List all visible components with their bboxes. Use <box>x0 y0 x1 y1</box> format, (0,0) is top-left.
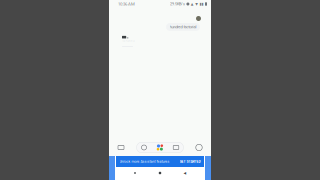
staticText: ▼ <box>195 2 198 6</box>
button[interactable]: Keyboard <box>115 141 127 153</box>
button[interactable]: Camera <box>136 142 151 153</box>
staticText: ▲ <box>191 2 194 6</box>
button[interactable]: Unlock more Assistant features <box>116 156 204 167</box>
button[interactable]: Google Assistant <box>151 142 168 153</box>
staticText: Unlock more Assistant features <box>119 159 169 164</box>
staticText: ◀ <box>183 171 186 175</box>
button[interactable]: Home <box>154 167 166 179</box>
staticText: 29.5KB/s <box>170 2 185 6</box>
staticText: hundred factorial <box>169 25 196 29</box>
button[interactable]: Recents <box>129 167 141 179</box>
staticText: 10:36 AM <box>118 1 135 6</box>
staticText: ▮▮ <box>200 2 204 6</box>
button[interactable]: Explore <box>193 141 205 153</box>
staticText: GET STARTED <box>179 159 200 164</box>
staticText: 100 factorial <box>122 39 135 42</box>
button[interactable]: Back <box>179 167 191 179</box>
button[interactable]: Lens <box>168 142 183 153</box>
